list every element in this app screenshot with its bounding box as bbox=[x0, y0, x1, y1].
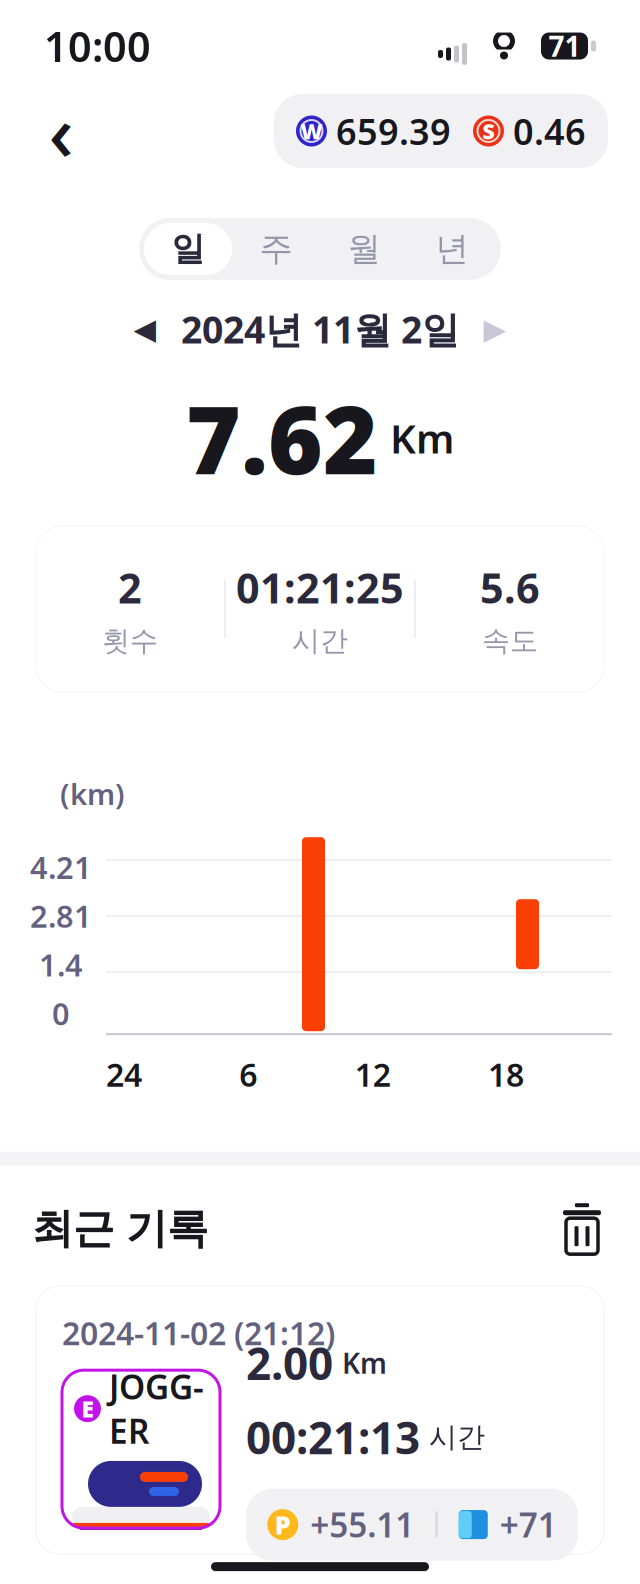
staticText: 10:00 bbox=[44, 19, 151, 73]
staticText: 0 bbox=[52, 993, 70, 1034]
staticText: 속도 bbox=[482, 624, 538, 658]
staticText: 2 bbox=[118, 560, 142, 615]
button[interactable]: 년 bbox=[408, 223, 496, 275]
staticText: Km bbox=[342, 1344, 387, 1381]
button[interactable]: 주 bbox=[232, 223, 320, 275]
staticText: P bbox=[275, 1508, 291, 1541]
staticText: 2.81 bbox=[30, 895, 92, 936]
staticText: 6 bbox=[239, 1053, 257, 1096]
staticText: 00:21:13 bbox=[246, 1408, 420, 1466]
staticText: 12 bbox=[355, 1053, 391, 1096]
staticText: E bbox=[81, 1394, 93, 1424]
staticText: ‹ bbox=[48, 80, 73, 182]
staticText: 18 bbox=[488, 1053, 524, 1096]
staticText: 주 bbox=[259, 228, 292, 269]
button[interactable]: Back bbox=[32, 102, 90, 160]
staticText: 최근 기록 bbox=[32, 1203, 208, 1254]
staticText: 2.00 bbox=[246, 1334, 333, 1392]
button[interactable]: Next day bbox=[467, 302, 523, 356]
staticText: 월 bbox=[347, 228, 380, 269]
staticText: 01:21:25 bbox=[236, 560, 404, 615]
button[interactable]: Token balances bbox=[274, 94, 608, 168]
staticText: JOGGER bbox=[109, 1364, 204, 1453]
staticText: 년 bbox=[435, 228, 468, 269]
staticText: 7.62 bbox=[186, 376, 378, 500]
staticText: 2024-11-02 (21:12) bbox=[62, 1312, 335, 1354]
button[interactable]: 2024-11-02 (21:12) bbox=[36, 1286, 604, 1554]
button[interactable]: Delete records bbox=[556, 1202, 608, 1256]
staticText: 24 bbox=[106, 1053, 142, 1096]
staticText: 659.39 bbox=[336, 107, 451, 155]
staticText: 0.46 bbox=[513, 107, 586, 155]
staticText: 5.6 bbox=[480, 560, 540, 615]
staticText: 시간 bbox=[429, 1420, 485, 1454]
staticText: 시간 bbox=[292, 624, 348, 658]
staticText: W bbox=[300, 117, 322, 145]
staticText: ◀ bbox=[133, 312, 156, 346]
button[interactable]: 월 bbox=[320, 223, 408, 275]
staticText: 1.4 bbox=[39, 944, 83, 985]
staticText: 4.21 bbox=[30, 847, 92, 887]
staticText: +55.11 bbox=[310, 1502, 414, 1547]
staticText: (km) bbox=[60, 774, 125, 813]
button[interactable]: 일 bbox=[144, 223, 232, 275]
staticText: 일 bbox=[171, 228, 204, 269]
staticText: S bbox=[482, 117, 494, 145]
staticText: 2024년 11월 2일 bbox=[181, 304, 459, 354]
staticText: 71 bbox=[548, 27, 580, 65]
staticText: +71 bbox=[500, 1502, 557, 1547]
staticText: ▶ bbox=[483, 312, 506, 346]
staticText: 횟수 bbox=[102, 624, 158, 658]
button[interactable]: Previous day bbox=[117, 302, 173, 356]
staticText: Km bbox=[390, 411, 454, 464]
